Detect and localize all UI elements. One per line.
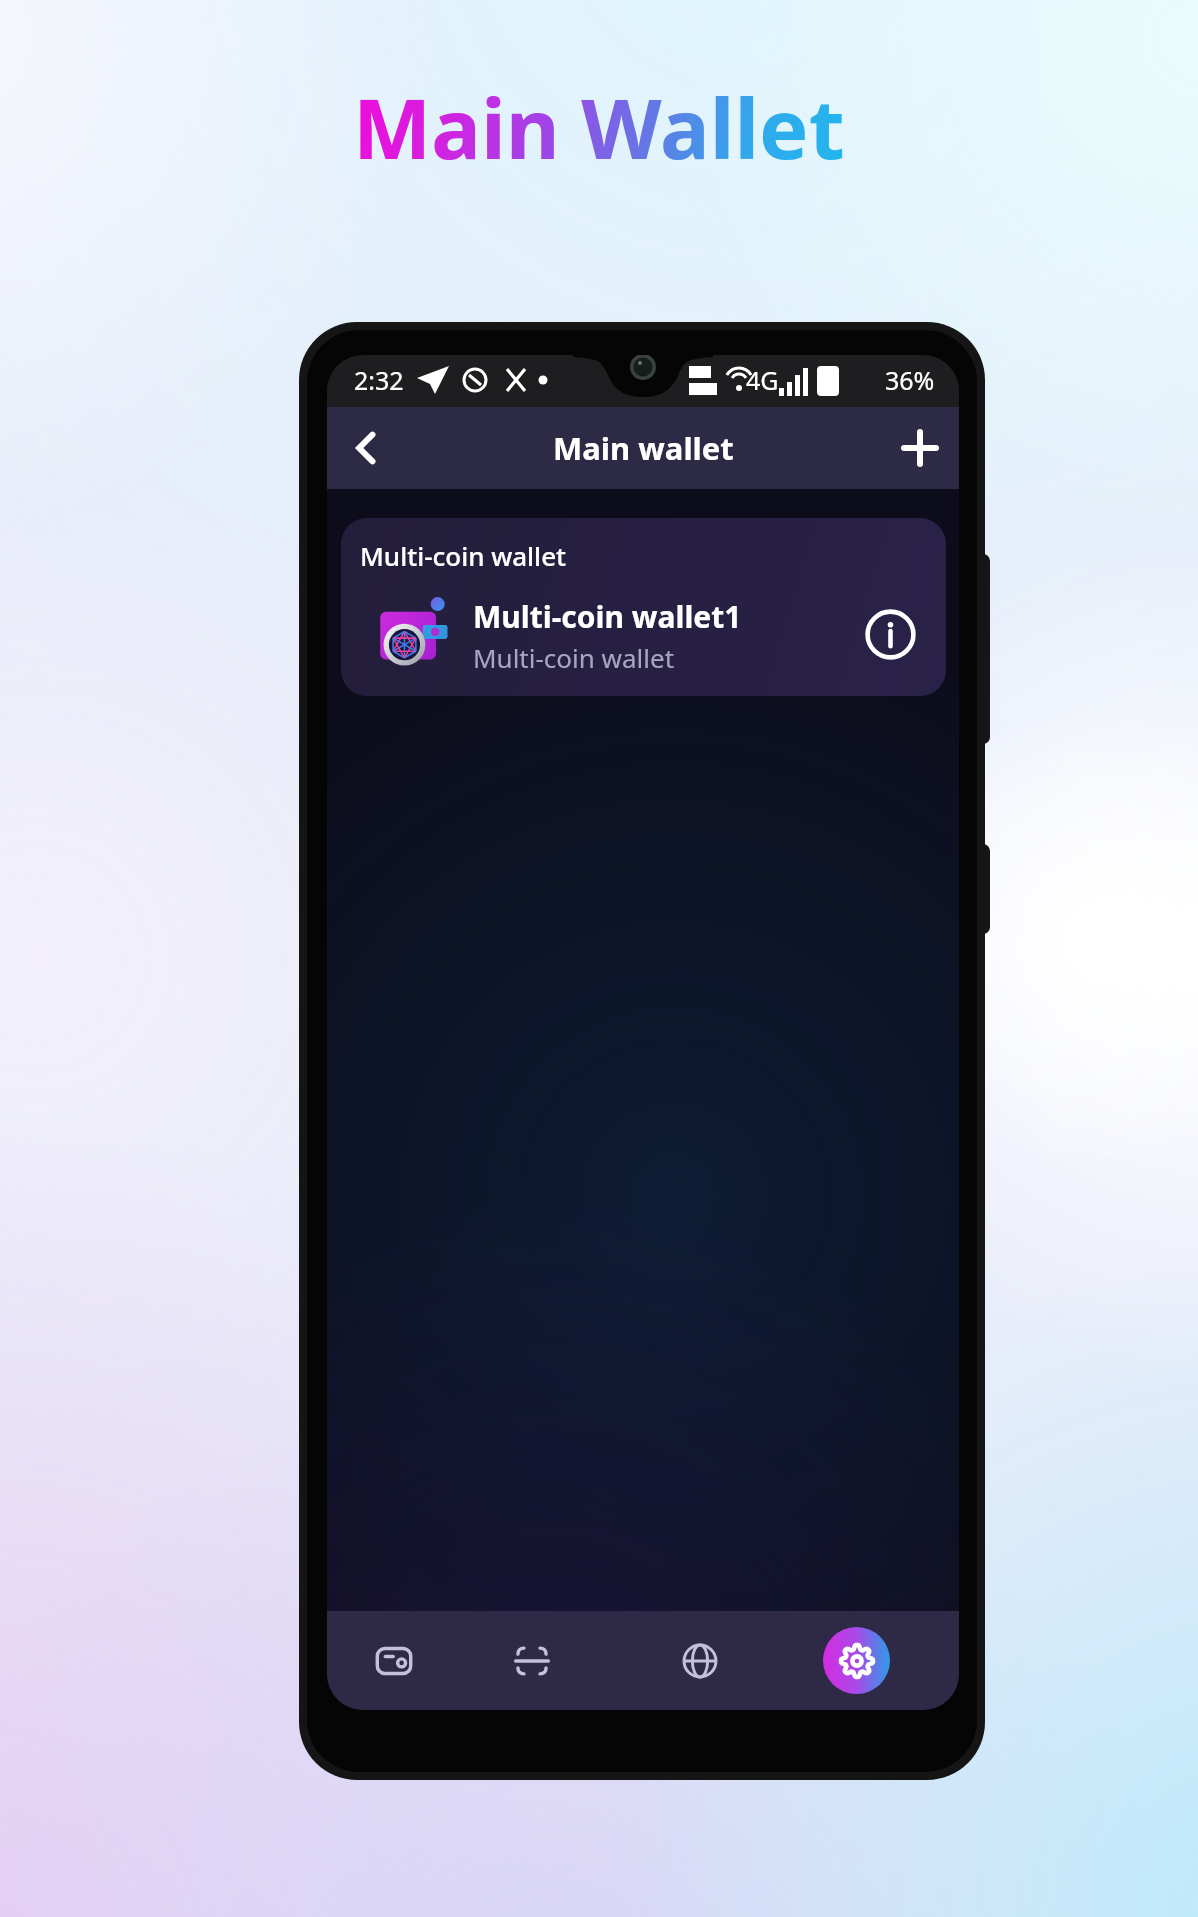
button[interactable]: Back [337, 419, 395, 477]
staticText: 2:32 [354, 363, 404, 397]
staticText: Multi-coin wallet [360, 538, 567, 573]
staticText: 4G [746, 363, 779, 397]
staticText: Multi-coin wallet1 [473, 596, 742, 637]
staticText: 36% [885, 363, 935, 397]
staticText: Multi-coin wallet [473, 640, 675, 675]
button[interactable]: Wallet [358, 1625, 430, 1697]
staticText: Main Wallet [353, 70, 845, 183]
button[interactable]: Settings [823, 1627, 890, 1694]
button[interactable]: Multi-coin wallet [341, 518, 946, 696]
button[interactable]: Add wallet [891, 419, 949, 477]
button[interactable]: Scan [496, 1625, 568, 1697]
button[interactable]: Info [860, 604, 920, 664]
staticText: Main wallet [553, 427, 734, 469]
button[interactable]: Browser [664, 1625, 736, 1697]
